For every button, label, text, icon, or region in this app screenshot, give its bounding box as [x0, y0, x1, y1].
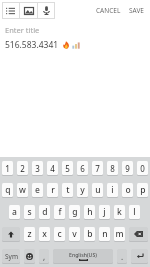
- button[interactable]: k: [114, 205, 125, 219]
- staticText: s: [27, 206, 32, 218]
- button[interactable]: g: [69, 205, 80, 219]
- button[interactable]: 4: [47, 161, 58, 175]
- button[interactable]: 7: [92, 161, 103, 175]
- staticText: 516.583.4341: [5, 39, 59, 51]
- staticText: j: [103, 206, 106, 218]
- button[interactable]: z: [24, 227, 35, 241]
- staticText: 9: [125, 163, 130, 174]
- staticText: 4: [50, 163, 55, 174]
- button[interactable]: n: [99, 227, 110, 241]
- button[interactable]: 9: [122, 161, 133, 175]
- staticText: 6: [80, 163, 85, 174]
- staticText: q: [5, 184, 11, 196]
- button[interactable]: a: [9, 205, 20, 219]
- button[interactable]: 0: [137, 161, 148, 175]
- staticText: English(US): [69, 251, 97, 258]
- button[interactable]: t: [62, 183, 73, 197]
- staticText: u: [95, 184, 101, 196]
- button[interactable]: l: [129, 205, 140, 219]
- button[interactable]: b: [84, 227, 95, 241]
- button[interactable]: q: [2, 183, 13, 197]
- button[interactable]: Space: [53, 249, 113, 263]
- button[interactable]: y: [77, 183, 88, 197]
- button[interactable]: i: [107, 183, 118, 197]
- staticText: h: [87, 206, 93, 218]
- staticText: 3: [35, 163, 40, 174]
- button[interactable]: v: [69, 227, 80, 241]
- staticText: z: [27, 228, 32, 240]
- button[interactable]: d: [39, 205, 50, 219]
- button[interactable]: Voice input: [38, 2, 55, 19]
- button[interactable]: 5: [62, 161, 73, 175]
- staticText: l: [133, 206, 136, 218]
- button[interactable]: 8: [107, 161, 118, 175]
- staticText: 8: [110, 163, 115, 174]
- staticText: d: [42, 206, 48, 218]
- staticText: 7: [95, 163, 100, 174]
- button[interactable]: m: [114, 227, 125, 241]
- staticText: ,: [43, 251, 46, 262]
- button[interactable]: r: [47, 183, 58, 197]
- button[interactable]: c: [54, 227, 65, 241]
- button[interactable]: 3: [32, 161, 43, 175]
- staticText: c: [57, 228, 62, 240]
- staticText: f: [58, 206, 62, 218]
- staticText: x: [42, 228, 47, 240]
- staticText: r: [51, 184, 55, 196]
- button[interactable]: 6: [77, 161, 88, 175]
- staticText: v: [72, 228, 77, 240]
- staticText: o: [125, 184, 131, 196]
- button[interactable]: Insert image: [20, 2, 37, 19]
- button[interactable]: SAVE: [125, 1, 150, 20]
- staticText: t: [66, 184, 70, 196]
- button[interactable]: Sym: [2, 249, 20, 263]
- staticText: w: [19, 184, 26, 196]
- button[interactable]: Bullet list: [2, 2, 19, 19]
- staticText: Enter title: [5, 25, 40, 35]
- staticText: g: [72, 206, 78, 218]
- staticText: n: [102, 228, 108, 240]
- button[interactable]: .: [117, 249, 127, 263]
- button[interactable]: x: [39, 227, 50, 241]
- staticText: y: [80, 184, 85, 196]
- button[interactable]: s: [24, 205, 35, 219]
- staticText: CANCEL: [96, 6, 121, 15]
- button[interactable]: Enter: [131, 249, 148, 263]
- staticText: 2: [20, 163, 25, 174]
- button[interactable]: Backspace: [129, 227, 148, 241]
- staticText: Sym: [5, 252, 18, 261]
- button[interactable]: 2: [17, 161, 28, 175]
- staticText: e: [35, 184, 40, 196]
- button[interactable]: ,: [39, 249, 49, 263]
- button[interactable]: u: [92, 183, 103, 197]
- button[interactable]: e: [32, 183, 43, 197]
- button[interactable]: 1: [2, 161, 13, 175]
- button[interactable]: j: [99, 205, 110, 219]
- staticText: b: [87, 228, 93, 240]
- button[interactable]: Emoji: [24, 249, 35, 263]
- button[interactable]: Shift: [2, 227, 20, 241]
- staticText: 0: [140, 163, 145, 174]
- staticText: i: [111, 184, 114, 196]
- button[interactable]: h: [84, 205, 95, 219]
- staticText: 1: [5, 163, 10, 174]
- staticText: .: [121, 251, 124, 262]
- button[interactable]: w: [17, 183, 28, 197]
- staticText: a: [12, 206, 17, 218]
- staticText: k: [117, 206, 122, 218]
- button[interactable]: p: [137, 183, 148, 197]
- staticText: SAVE: [129, 6, 144, 15]
- staticText: m: [115, 228, 124, 240]
- button[interactable]: o: [122, 183, 133, 197]
- staticText: p: [140, 184, 146, 196]
- staticText: 5: [65, 163, 70, 174]
- button[interactable]: f: [54, 205, 65, 219]
- button[interactable]: CANCEL: [92, 1, 125, 20]
